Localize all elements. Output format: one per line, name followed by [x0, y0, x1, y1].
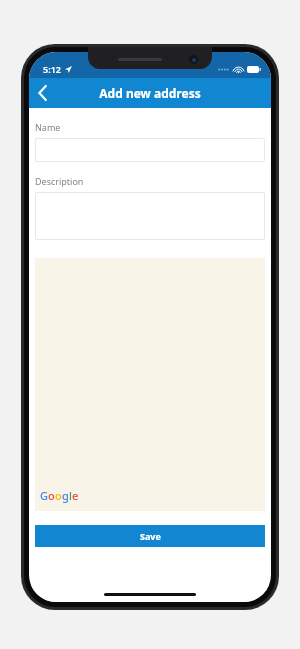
staticText: 5:12: [43, 63, 61, 75]
staticText: Description: [35, 175, 84, 187]
staticText: e: [72, 488, 79, 503]
staticText: Save: [140, 530, 161, 542]
staticText: Name: [35, 121, 61, 133]
button[interactable]: [35, 138, 265, 162]
button[interactable]: G: [35, 258, 265, 511]
staticText: o: [48, 488, 55, 503]
staticText: g: [62, 488, 69, 503]
staticText: Add new address: [99, 85, 201, 101]
button[interactable]: [35, 192, 265, 240]
staticText: o: [55, 488, 62, 503]
button[interactable]: Save: [35, 525, 265, 547]
staticText: l: [69, 488, 72, 503]
button[interactable]: Back: [29, 78, 57, 108]
staticText: G: [40, 488, 48, 503]
